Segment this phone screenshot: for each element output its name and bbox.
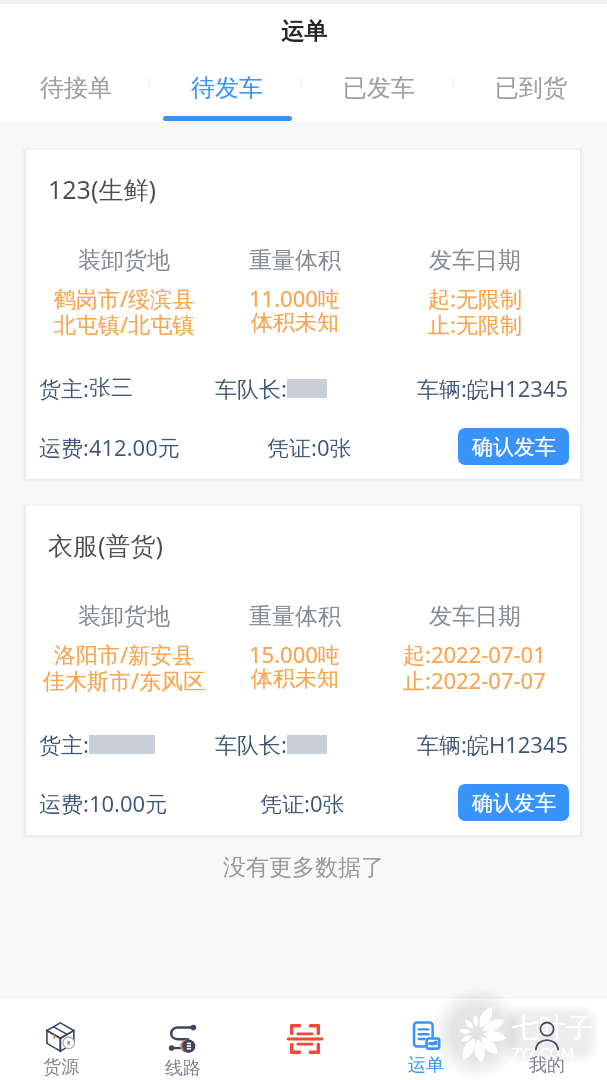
staticText: 没有更多数据了 xyxy=(223,853,384,882)
staticText: 货主: xyxy=(39,729,89,759)
staticText: 运费:10.00元 xyxy=(39,788,168,818)
staticText: 待接单 xyxy=(40,73,112,103)
staticText: 15.000吨 xyxy=(249,639,340,669)
button[interactable]: 已到货 xyxy=(455,59,607,121)
staticText: 体积未知 xyxy=(251,665,339,693)
staticText: 起:2022-07-01 xyxy=(403,639,546,669)
button[interactable]: 货源 xyxy=(0,997,122,1080)
staticText: 起:无限制 xyxy=(428,283,522,313)
staticText: 鹤岗市/绥滨县 xyxy=(54,283,195,313)
staticText: 11.000吨 xyxy=(249,283,340,313)
button[interactable]: 确认发车 xyxy=(458,784,569,821)
staticText: 佳木斯市/东风区 xyxy=(43,665,206,695)
staticText: 车队长: xyxy=(215,729,287,759)
staticText: 确认发车 xyxy=(472,790,556,816)
staticText: 七叶子 xyxy=(512,1011,593,1045)
button[interactable]: 确认发车 xyxy=(458,428,569,465)
staticText: 车辆:皖H12345 xyxy=(417,373,569,403)
staticText: 发车日期 xyxy=(429,602,521,631)
staticText: 凭证:0张 xyxy=(260,788,345,818)
staticText: 已发车 xyxy=(343,73,415,103)
staticText: 7YZ.COM xyxy=(511,1042,575,1062)
button[interactable]: 运单 xyxy=(365,997,486,1080)
staticText: 发车日期 xyxy=(429,246,521,275)
staticText: 装卸货地 xyxy=(78,602,170,631)
staticText: 待发车 xyxy=(191,73,263,103)
button[interactable]: 待接单 xyxy=(0,59,151,121)
staticText: 确认发车 xyxy=(472,434,556,460)
button[interactable]: 123(生鲜) xyxy=(26,150,580,479)
staticText: 我的 xyxy=(529,1054,565,1077)
button[interactable]: 线路 xyxy=(122,997,244,1080)
staticText: 张三 xyxy=(89,374,133,402)
staticText: 线路 xyxy=(165,1057,201,1080)
staticText: 123(生鲜) xyxy=(48,172,156,206)
button[interactable]: 已发车 xyxy=(303,59,455,121)
staticText: 车辆:皖H12345 xyxy=(417,729,569,759)
staticText: 止:2022-07-07 xyxy=(403,665,546,695)
button[interactable]: 衣服(普货) xyxy=(26,506,580,835)
staticText: 装卸货地 xyxy=(78,246,170,275)
staticText: 洛阳市/新安县 xyxy=(54,639,195,669)
staticText: 体积未知 xyxy=(251,309,339,337)
staticText: 已到货 xyxy=(495,73,567,103)
button[interactable]: 待发车 xyxy=(151,59,303,121)
staticText: 货源 xyxy=(43,1056,79,1079)
staticText: 重量体积 xyxy=(249,602,341,631)
staticText: 货主: xyxy=(39,373,89,403)
button[interactable]: Scan xyxy=(244,997,365,1080)
button[interactable]: 我的 xyxy=(486,997,607,1080)
staticText: 运单 xyxy=(281,17,327,46)
staticText: 运费:412.00元 xyxy=(39,432,180,462)
staticText: 运单 xyxy=(408,1054,444,1077)
staticText: 凭证:0张 xyxy=(267,432,352,462)
staticText: 北屯镇/北屯镇 xyxy=(54,309,195,339)
staticText: 重量体积 xyxy=(249,246,341,275)
staticText: 衣服(普货) xyxy=(48,528,164,562)
staticText: 车队长: xyxy=(215,373,287,403)
staticText: 止:无限制 xyxy=(428,309,522,339)
